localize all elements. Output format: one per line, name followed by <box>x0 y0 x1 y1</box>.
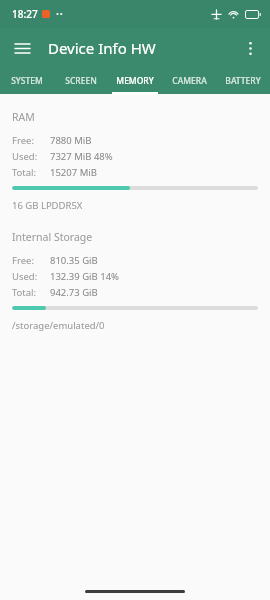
staticText: SCREEN <box>65 75 97 87</box>
staticText: /storage/emulated/0 <box>12 319 105 332</box>
staticText: 15207 MiB <box>50 166 97 179</box>
button[interactable]: More options <box>236 34 264 62</box>
staticText: 7327 MiB 48% <box>50 150 113 163</box>
button[interactable]: BATTERY <box>216 68 270 94</box>
staticText: 132.39 GiB 14% <box>50 270 119 283</box>
staticText: 810.35 GiB <box>50 254 98 267</box>
button[interactable]: Internal Storage <box>0 230 270 332</box>
button[interactable]: RAM <box>0 110 270 212</box>
staticText: Free: <box>12 134 44 147</box>
button[interactable]: Open navigation menu <box>8 34 36 62</box>
staticText: Total: <box>12 286 44 299</box>
staticText: RAM <box>12 110 35 124</box>
staticText: 16 GB LPDDR5X <box>12 199 83 212</box>
button[interactable]: SYSTEM <box>0 68 54 94</box>
staticText: SYSTEM <box>11 75 43 87</box>
staticText: 7880 MiB <box>50 134 92 147</box>
staticText: Total: <box>12 166 44 179</box>
staticText: Free: <box>12 254 44 267</box>
button[interactable]: CAMERA <box>162 68 216 94</box>
staticText: 942.73 GiB <box>50 286 98 299</box>
button[interactable]: SCREEN <box>54 68 108 94</box>
staticText: MEMORY <box>116 75 154 87</box>
staticText: Internal Storage <box>12 230 93 244</box>
staticText: Device Info HW <box>48 38 156 58</box>
staticText: 18:27 <box>12 7 38 21</box>
staticText: Used: <box>12 150 44 163</box>
staticText: BATTERY <box>225 75 261 87</box>
button[interactable]: MEMORY <box>108 68 162 94</box>
staticText: Used: <box>12 270 44 283</box>
staticText: CAMERA <box>172 75 207 87</box>
